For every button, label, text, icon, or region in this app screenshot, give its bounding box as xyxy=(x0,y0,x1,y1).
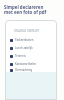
staticText: Kantoorartikelen xyxy=(15,62,37,66)
button[interactable]: Lunch zakelijk xyxy=(5,44,57,52)
staticText: Lunch zakelijk xyxy=(15,46,33,50)
staticText: Parkeerkosten xyxy=(15,38,34,42)
staticText: Simpel declareren met een foto of pdf xyxy=(4,4,47,15)
staticText: Overnachting xyxy=(15,68,33,72)
button[interactable]: Kantoorartikelen xyxy=(5,60,57,68)
staticText: ONLANGS GEBRUIKT xyxy=(14,29,40,33)
button[interactable]: Overnachting xyxy=(5,68,57,72)
button[interactable]: Parkeerkosten xyxy=(5,36,57,44)
staticText: Treinreis xyxy=(15,54,26,58)
button[interactable]: Treinreis xyxy=(5,52,57,60)
